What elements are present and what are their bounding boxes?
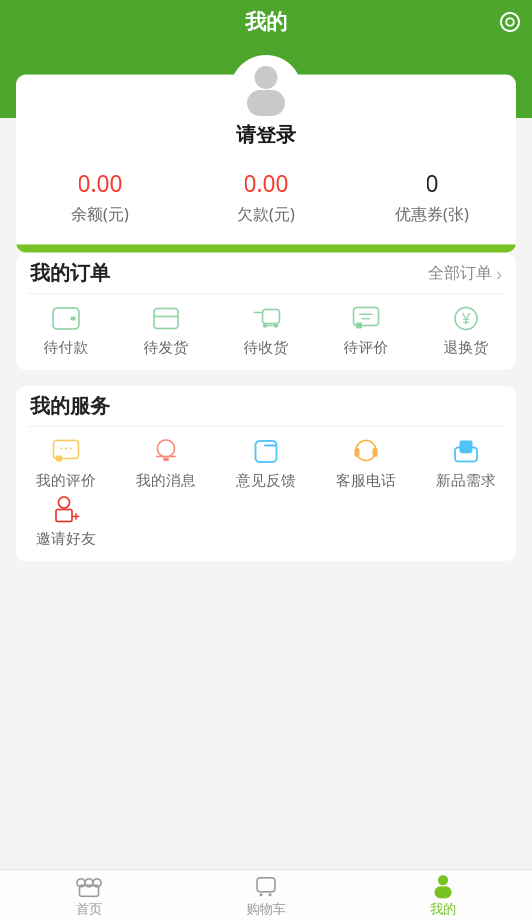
staticText: 退换货 xyxy=(443,338,488,356)
staticText: 我的 xyxy=(245,9,287,35)
staticText: 客服电话 xyxy=(336,471,396,489)
button[interactable]: 待收货 xyxy=(216,302,316,360)
staticText: 0.00 xyxy=(77,168,122,198)
staticText: 待发货 xyxy=(143,338,188,356)
staticText: 我的 xyxy=(430,901,456,917)
button[interactable]: 我的消息 xyxy=(116,435,216,493)
staticText: ¥ xyxy=(461,308,470,329)
button[interactable]: 意见反馈 xyxy=(216,435,316,493)
staticText: 0 xyxy=(425,168,438,198)
button[interactable]: 0.00 xyxy=(183,168,349,224)
button[interactable]: 购物车 xyxy=(177,870,354,922)
button[interactable]: 客服电话 xyxy=(316,435,416,493)
staticText: 意见反馈 xyxy=(236,471,296,489)
button[interactable]: 0.00 xyxy=(17,168,183,224)
button[interactable]: 待付款 xyxy=(16,302,116,360)
staticText: 新品需求 xyxy=(436,471,496,489)
button[interactable]: 全部订单 xyxy=(428,256,502,290)
staticText: 邀请好友 xyxy=(36,529,96,547)
staticText: 我的评价 xyxy=(36,471,96,489)
staticText: 优惠券(张) xyxy=(395,203,469,224)
button[interactable]: ¥ xyxy=(416,302,516,360)
button[interactable]: 我的 xyxy=(354,870,531,922)
button[interactable]: 我的评价 xyxy=(16,435,116,493)
button[interactable]: 邀请好友 xyxy=(16,493,116,551)
button[interactable]: 新品需求 xyxy=(416,435,516,493)
staticText: › xyxy=(496,260,502,286)
staticText: 待评价 xyxy=(343,338,388,356)
staticText: 全部订单 xyxy=(428,263,492,283)
button[interactable]: 待评价 xyxy=(316,302,416,360)
staticText: 待收货 xyxy=(243,338,288,356)
staticText: 0.00 xyxy=(243,168,288,198)
staticText: 我的消息 xyxy=(136,471,196,489)
staticText: 首页 xyxy=(76,901,102,917)
button[interactable]: 请登录 xyxy=(236,119,296,150)
button[interactable]: 首页 xyxy=(0,870,177,922)
staticText: 余额(元) xyxy=(71,203,129,224)
staticText: 我的订单 xyxy=(30,261,110,285)
staticText: 我的服务 xyxy=(30,394,110,418)
button[interactable]: 0 xyxy=(349,168,515,224)
staticText: 请登录 xyxy=(236,122,296,147)
button[interactable]: 待发货 xyxy=(116,302,216,360)
staticText: 待付款 xyxy=(43,338,88,356)
button[interactable]: Settings xyxy=(498,10,532,34)
staticText: 购物车 xyxy=(246,901,285,917)
staticText: 欠款(元) xyxy=(237,203,295,224)
